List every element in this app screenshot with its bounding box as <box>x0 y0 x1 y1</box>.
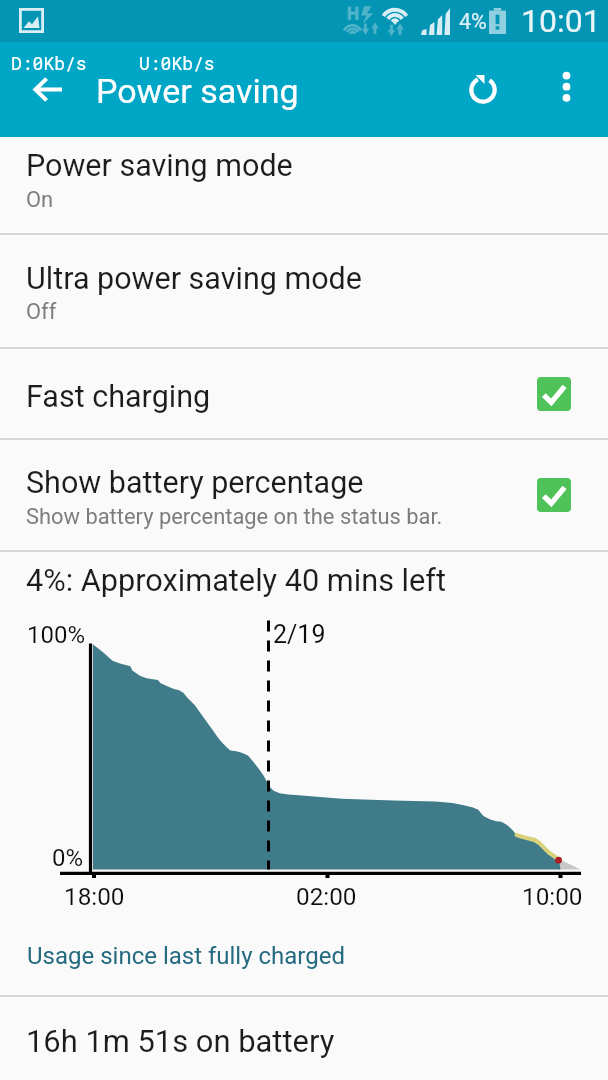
button[interactable]: Fast charging <box>537 377 571 411</box>
staticText: 100% <box>27 621 86 649</box>
button[interactable]: Usage since last fully charged <box>27 942 345 970</box>
staticText: Power saving <box>96 71 299 111</box>
staticText: Ultra power saving mode <box>26 261 362 297</box>
button[interactable]: Navigate up <box>21 63 75 117</box>
button[interactable]: Ultra power saving mode <box>0 236 608 346</box>
staticText: Show battery percentage <box>26 465 364 501</box>
button[interactable]: Show battery percentage <box>0 441 608 549</box>
staticText: 16h 1m 51s on battery <box>26 1023 335 1059</box>
staticText: U:0Kb/s <box>139 51 215 75</box>
staticText: 10:00 <box>522 882 583 910</box>
button[interactable]: Show battery percentage <box>537 478 571 512</box>
staticText: Show battery percentage on the status ba… <box>26 504 443 530</box>
button[interactable]: Fast charging <box>0 350 608 437</box>
staticText: Fast charging <box>26 379 211 415</box>
staticText: Off <box>26 299 57 325</box>
staticText: 4% <box>459 9 487 34</box>
staticText: Power saving mode <box>26 148 293 184</box>
button[interactable]: Power saving mode <box>0 137 608 232</box>
button[interactable]: More options <box>540 62 594 116</box>
staticText: 4%: Approximately 40 mins left <box>26 563 447 599</box>
staticText: 2/19 <box>273 620 326 649</box>
button[interactable]: 16h 1m 51s on battery <box>0 998 608 1080</box>
staticText: D:0Kb/s <box>11 51 87 75</box>
staticText: 0% <box>52 844 84 872</box>
staticText: 10:01 <box>521 2 601 40</box>
staticText: On <box>26 187 54 213</box>
staticText: 18:00 <box>64 882 125 910</box>
staticText: 02:00 <box>296 882 357 910</box>
button[interactable]: Refresh <box>456 62 510 116</box>
